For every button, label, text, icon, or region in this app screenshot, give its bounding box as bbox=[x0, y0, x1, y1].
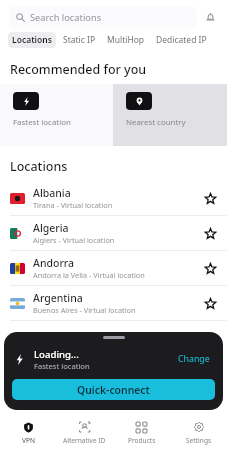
button[interactable]: Favourite Albania bbox=[200, 188, 220, 208]
button[interactable]: Change bbox=[175, 349, 213, 369]
staticText: Fastest location bbox=[13, 117, 71, 128]
button[interactable]: Algeria bbox=[0, 216, 227, 250]
staticText: Andorra la Vella - Virtual location bbox=[33, 270, 145, 280]
staticText: Quick-connect bbox=[77, 383, 150, 397]
button[interactable]: Alternative ID bbox=[56, 416, 113, 450]
staticText: Loading... bbox=[34, 348, 79, 361]
staticText: Andorra bbox=[33, 256, 75, 270]
staticText: Recommended for you bbox=[10, 61, 147, 78]
button[interactable]: Products bbox=[113, 416, 170, 450]
button[interactable]: Favourite Andorra bbox=[200, 258, 220, 278]
staticText: Tirana - Virtual location bbox=[33, 200, 113, 210]
button[interactable]: Search locations bbox=[9, 6, 197, 29]
button[interactable]: Favourite Argentina bbox=[200, 293, 220, 313]
button[interactable]: Static IP bbox=[59, 32, 100, 48]
button[interactable]: Nearest country bbox=[113, 84, 227, 146]
staticText: Change bbox=[178, 353, 210, 365]
button[interactable]: Favourite Algeria bbox=[200, 223, 220, 243]
button[interactable]: Argentina bbox=[0, 286, 227, 320]
staticText: Static IP bbox=[63, 34, 96, 46]
staticText: Nearest country bbox=[126, 117, 186, 128]
staticText: Austria bbox=[33, 331, 69, 345]
staticText: Fastest location bbox=[34, 361, 90, 371]
staticText: Algiers - Virtual location bbox=[33, 235, 115, 245]
button[interactable]: Andorra bbox=[0, 251, 227, 285]
staticText: Buenos Aires - Virtual location bbox=[33, 305, 136, 315]
staticText: Albania bbox=[33, 186, 71, 200]
staticText: Locations bbox=[10, 158, 68, 175]
staticText: Argentina bbox=[33, 291, 83, 305]
staticText: MultiHop bbox=[107, 34, 145, 46]
button[interactable]: Locations bbox=[8, 32, 56, 48]
button[interactable]: Notifications bbox=[197, 5, 223, 30]
button[interactable]: Austria bbox=[0, 321, 227, 355]
staticText: Settings bbox=[186, 436, 212, 445]
staticText: Dedicated IP bbox=[156, 34, 207, 46]
button[interactable]: Albania bbox=[0, 181, 227, 215]
button[interactable]: Settings bbox=[170, 416, 227, 450]
button[interactable]: Quick-connect bbox=[12, 379, 215, 400]
button[interactable]: Dedicated IP bbox=[152, 32, 211, 48]
staticText: Alternative ID bbox=[63, 436, 106, 445]
button[interactable]: MultiHop bbox=[103, 32, 149, 48]
button[interactable]: VPN bbox=[0, 416, 56, 450]
staticText: Locations bbox=[12, 34, 52, 46]
button[interactable]: Fastest location bbox=[0, 84, 113, 146]
staticText: VPN bbox=[22, 436, 35, 445]
staticText: Algeria bbox=[33, 221, 69, 235]
staticText: Products bbox=[128, 436, 156, 445]
staticText: Search locations bbox=[30, 11, 102, 24]
